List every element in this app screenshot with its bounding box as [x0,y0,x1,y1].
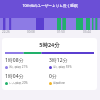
staticText: 覚醒時間 [53,81,65,85]
staticText: 1時04分 [5,73,24,80]
staticText: 深い睡眠 59% [53,65,72,69]
staticText: 10分他のユーザーよりも長く睡眠 [0,3,100,8]
staticText: 0分 [49,73,57,80]
staticText: 03:44 [83,30,91,34]
staticText: 1時08分 [5,57,24,64]
staticText: 5時24分 [2,41,97,49]
staticText: レム睡眠 20% [9,81,28,85]
staticText: 01:50 [57,30,65,34]
staticText: 3時12分 [49,57,68,64]
staticText: 22:26 [2,30,10,34]
staticText: 浅い睡眠 21% [9,65,28,69]
staticText: 00:08 [27,30,35,34]
